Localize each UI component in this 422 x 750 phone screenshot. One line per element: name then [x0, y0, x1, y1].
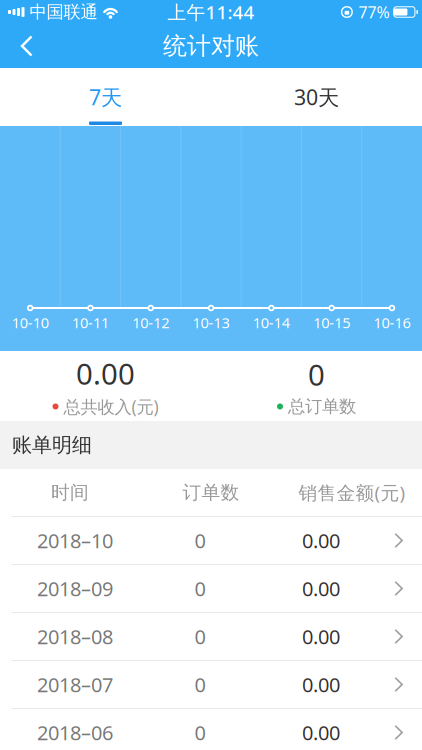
staticText: 0.00 [302, 623, 340, 650]
staticText: 0 [194, 527, 205, 554]
staticText: 0 [194, 671, 205, 698]
staticText: 0.00 [76, 354, 135, 393]
staticText: 0 [194, 575, 205, 602]
staticText: 10-15 [313, 313, 350, 332]
staticText: 销售金额(元) [298, 480, 405, 505]
staticText: 7天 [89, 83, 122, 111]
staticText: 30天 [294, 83, 339, 111]
staticText: 2018–07 [37, 671, 113, 698]
staticText: 0 [194, 719, 205, 746]
button[interactable]: 30天 [211, 68, 422, 126]
staticText: 10-12 [132, 313, 169, 332]
staticText: 2018–08 [37, 623, 113, 650]
button[interactable]: 2018–09 [0, 565, 422, 612]
button[interactable]: 2018–06 [0, 709, 422, 750]
staticText: 总订单数 [288, 396, 356, 417]
staticText: 时间 [51, 481, 89, 504]
staticText: 上午11:44 [167, 0, 254, 24]
staticText: 账单明细 [12, 433, 92, 457]
staticText: 10-11 [72, 313, 109, 332]
button[interactable]: Back [0, 24, 47, 68]
staticText: 0.00 [302, 575, 340, 602]
staticText: 订单数 [182, 481, 239, 504]
staticText: 10-14 [253, 313, 290, 332]
staticText: 0 [194, 623, 205, 650]
staticText: 2018–10 [37, 527, 113, 554]
staticText: 0.00 [302, 671, 340, 698]
staticText: 0.00 [302, 527, 340, 554]
staticText: 0.00 [302, 719, 340, 746]
staticText: 2018–09 [37, 575, 113, 602]
staticText: 10-13 [193, 313, 230, 332]
staticText: 统计对账 [163, 31, 259, 61]
button[interactable]: 2018–10 [0, 517, 422, 564]
button[interactable]: 2018–08 [0, 613, 422, 660]
staticText: 10-16 [373, 313, 410, 332]
staticText: 10-10 [12, 313, 49, 332]
button[interactable]: 2018–07 [0, 661, 422, 708]
staticText: 77% [358, 1, 389, 23]
staticText: 0 [308, 355, 325, 394]
staticText: 2018–06 [37, 719, 113, 746]
button[interactable]: 7天 [0, 68, 211, 126]
staticText: 总共收入(元) [63, 395, 158, 418]
staticText: 中国联通 [29, 1, 97, 23]
